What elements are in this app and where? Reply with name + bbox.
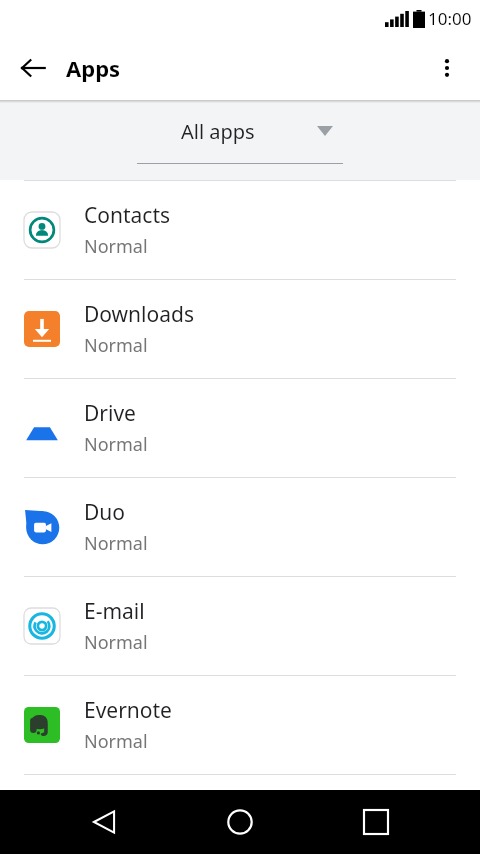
staticText: E-mail — [84, 597, 145, 626]
staticText: Downloads — [84, 300, 194, 329]
button[interactable]: Downloads — [0, 280, 480, 378]
button[interactable]: Home — [208, 790, 272, 854]
staticText: Normal — [84, 630, 148, 655]
staticText: Contacts — [84, 201, 171, 230]
button[interactable]: Duo — [0, 478, 480, 576]
button[interactable]: Recent apps — [344, 790, 408, 854]
staticText: Apps — [66, 53, 121, 83]
staticText: Normal — [84, 729, 148, 754]
staticText: Normal — [84, 234, 148, 259]
button[interactable]: Drive — [0, 379, 480, 477]
button[interactable]: Back — [10, 45, 56, 91]
staticText: Duo — [84, 498, 126, 527]
staticText: Evernote — [84, 696, 172, 725]
button[interactable]: Back — [72, 790, 136, 854]
button[interactable]: Contacts — [0, 181, 480, 279]
staticText: Normal — [84, 531, 148, 556]
staticText: Drive — [84, 399, 136, 428]
staticText: 10:00 — [428, 7, 472, 30]
button[interactable]: All apps — [137, 108, 343, 164]
staticText: All apps — [181, 118, 255, 145]
staticText: Normal — [84, 333, 148, 358]
staticText: Normal — [84, 432, 148, 457]
button[interactable]: More options — [424, 45, 470, 91]
button[interactable]: E-mail — [0, 577, 480, 675]
button[interactable]: Evernote — [0, 676, 480, 774]
